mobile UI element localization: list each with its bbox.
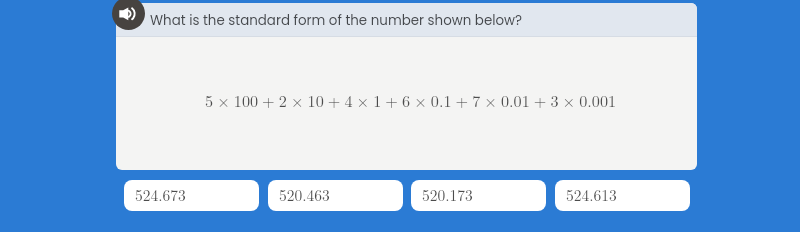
staticText: 5 × 100 + 2 × 10 + 4 × 1 + 6 × 0.1 + 7 ×… bbox=[205, 89, 617, 112]
staticText: 520.173 bbox=[422, 184, 473, 206]
button[interactable]: Play audio bbox=[112, 0, 145, 30]
button[interactable]: 524.613 bbox=[555, 180, 690, 211]
button[interactable]: 520.173 bbox=[411, 180, 546, 211]
button[interactable]: 520.463 bbox=[268, 180, 403, 211]
staticText: 524.673 bbox=[135, 184, 186, 206]
button[interactable]: 524.673 bbox=[124, 180, 259, 211]
staticText: 524.613 bbox=[566, 184, 617, 206]
staticText: What is the standard form of the number … bbox=[150, 11, 523, 30]
staticText: 520.463 bbox=[279, 184, 330, 206]
